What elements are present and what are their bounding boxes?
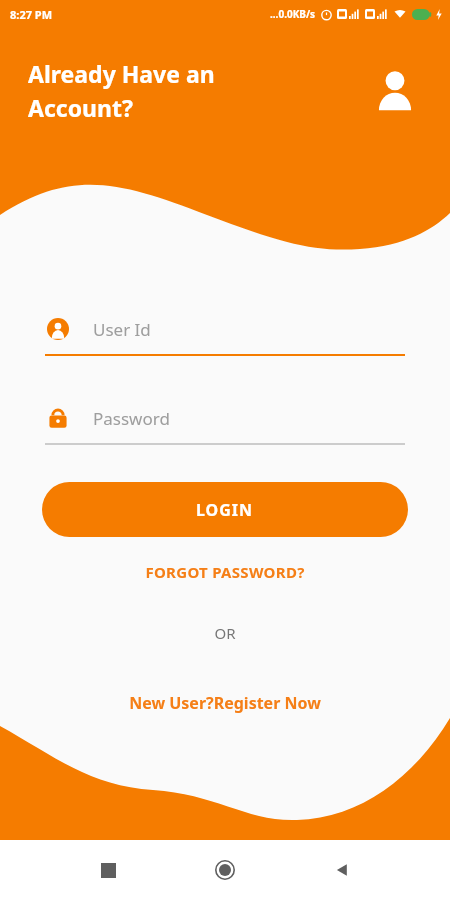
button[interactable]: New User?Register Now [0, 687, 450, 719]
staticText: ...0.0KB/s [270, 7, 316, 21]
button[interactable]: Back [320, 848, 364, 892]
button[interactable]: Home [203, 848, 247, 892]
button[interactable]: User Id [45, 312, 405, 346]
staticText: FORGOT PASSWORD? [145, 562, 305, 582]
button[interactable]: Account [366, 60, 424, 118]
staticText: OR [0, 623, 450, 643]
staticText: 8:27 PM [10, 7, 53, 22]
staticText: New User?Register Now [129, 692, 321, 714]
button[interactable]: Recent apps [86, 848, 130, 892]
button[interactable]: FORGOT PASSWORD? [0, 557, 450, 587]
staticText: LOGIN [196, 499, 254, 521]
staticText: Password [93, 407, 170, 430]
staticText: Already Have an Account? [28, 58, 366, 123]
staticText: User Id [93, 318, 151, 341]
button[interactable]: Password [45, 401, 405, 435]
button[interactable]: LOGIN [42, 482, 408, 537]
